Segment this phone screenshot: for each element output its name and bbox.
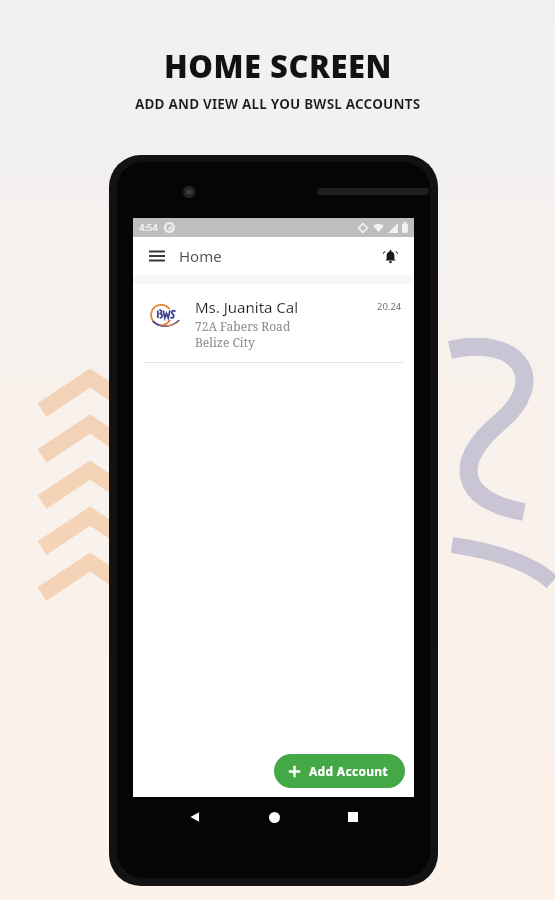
staticText: HOME SCREEN (164, 45, 392, 87)
staticText: Ms. Juanita Cal (195, 297, 299, 317)
staticText: Belize City (195, 334, 255, 350)
button[interactable]: Home (261, 804, 287, 830)
button[interactable]: Open navigation menu (144, 243, 170, 269)
button[interactable]: Recent apps (340, 804, 366, 830)
staticText: Home (179, 246, 222, 266)
staticText: Add Account (309, 763, 388, 779)
button[interactable]: Ms. Juanita Cal (133, 284, 414, 363)
staticText: 20.24 (377, 300, 402, 313)
staticText: 72A Fabers Road (195, 318, 291, 334)
button[interactable]: Back (182, 804, 208, 830)
button[interactable]: Notifications (377, 243, 403, 269)
staticText: 4:54 (139, 221, 158, 234)
staticText: ADD AND VIEW ALL YOU BWSL ACCOUNTS (135, 95, 421, 113)
button[interactable]: Add Account (274, 754, 405, 788)
